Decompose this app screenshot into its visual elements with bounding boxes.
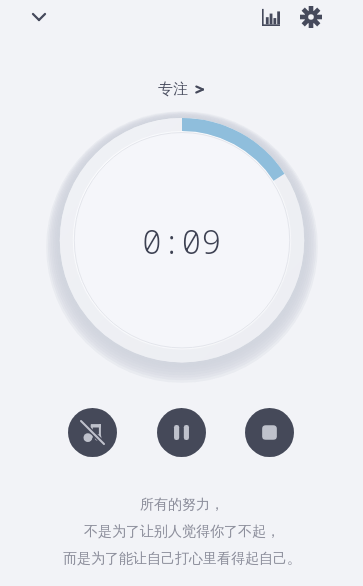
button[interactable]: Collapse [22, 0, 56, 34]
button[interactable]: 专注 [150, 76, 214, 103]
staticText: 而是为了能让自己打心里看得起自己。 [63, 550, 301, 568]
staticText: 所有的努力， [140, 496, 224, 514]
button[interactable]: Mute music [68, 408, 117, 457]
button[interactable]: Statistics [254, 0, 288, 34]
button[interactable]: Pause [157, 408, 206, 457]
staticText: 0:09 [142, 219, 222, 264]
staticText: 专注 [158, 80, 188, 99]
staticText: 不是为了让别人觉得你了不起， [84, 523, 280, 541]
button[interactable]: Stop [245, 408, 294, 457]
button[interactable]: Settings [294, 0, 328, 34]
